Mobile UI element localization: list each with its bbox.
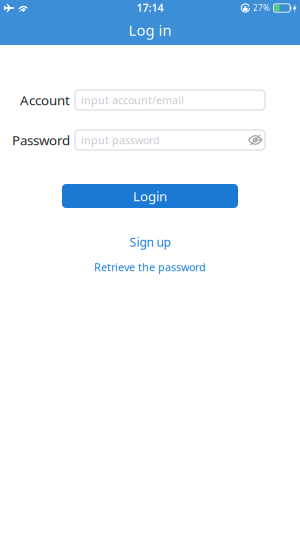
staticText: Login (133, 187, 167, 205)
staticText: Account (20, 91, 70, 109)
button[interactable]: Show password (248, 135, 265, 144)
staticText: 27% (253, 3, 270, 13)
staticText: input password (81, 133, 160, 147)
staticText: Sign up (129, 234, 170, 250)
button[interactable]: Sign up (129, 234, 170, 250)
staticText: Log in (128, 20, 171, 40)
staticText: Retrieve the password (94, 260, 206, 274)
staticText: input account/email (81, 93, 184, 107)
staticText: Password (12, 131, 70, 149)
staticText: 17:14 (136, 0, 163, 15)
button[interactable]: Login (62, 184, 238, 208)
button[interactable]: Retrieve the password (94, 259, 206, 275)
